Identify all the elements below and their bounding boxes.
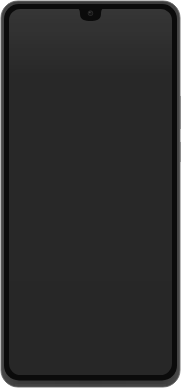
button[interactable]: Phone device xyxy=(0,0,181,388)
